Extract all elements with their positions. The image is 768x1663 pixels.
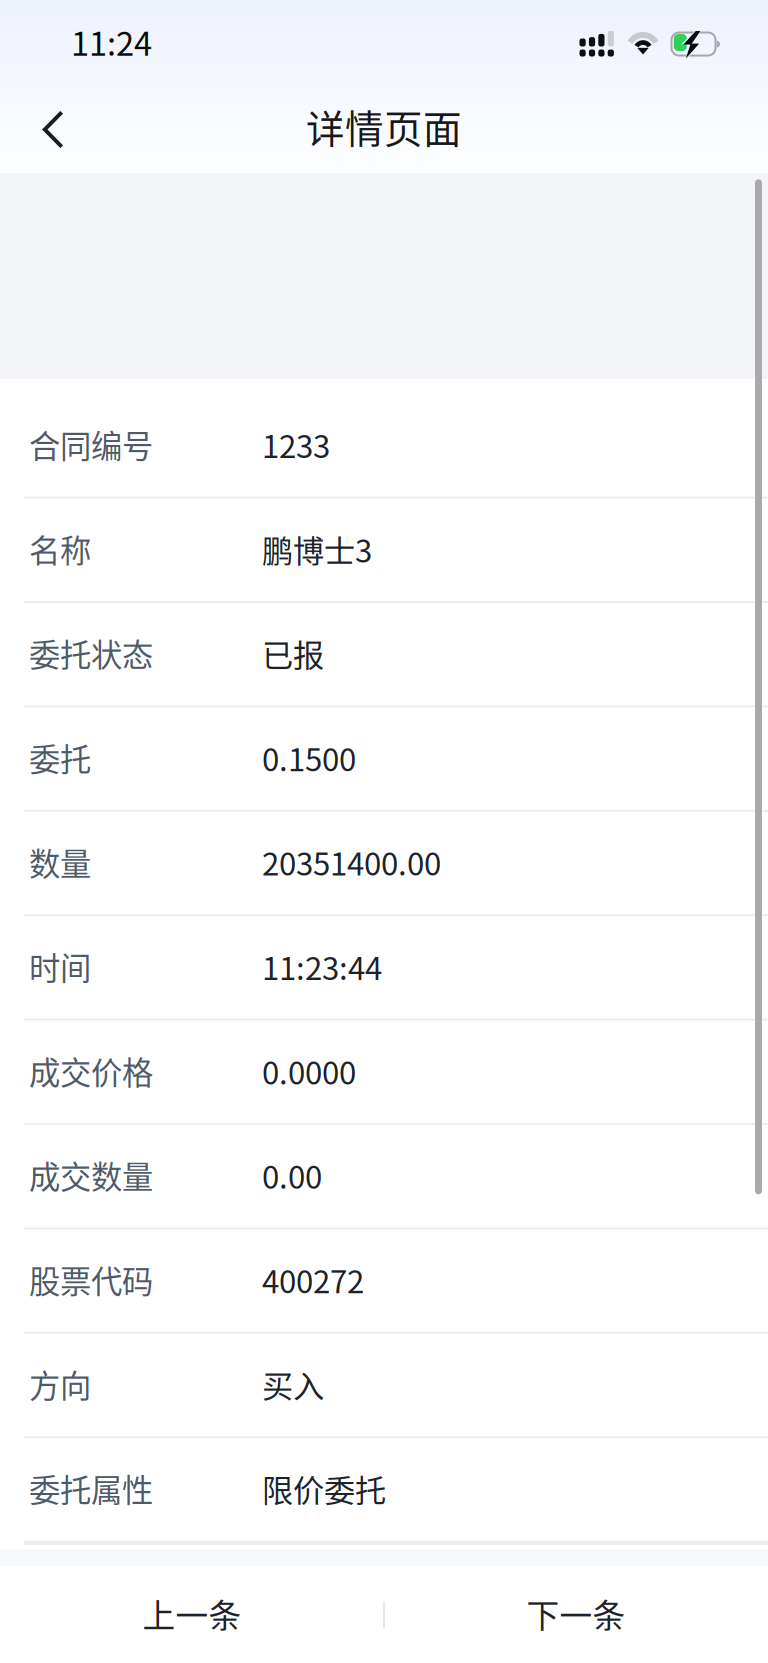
staticText: 方向 <box>29 1361 91 1407</box>
staticText: 股票代码 <box>29 1257 153 1302</box>
staticText: 详情页面 <box>306 99 462 154</box>
staticText: 上一条 <box>142 1590 241 1637</box>
staticText: 数量 <box>29 839 91 885</box>
button[interactable]: 合同编号 <box>0 394 768 499</box>
staticText: 名称 <box>29 526 91 571</box>
staticText: 11:23:44 <box>262 944 382 989</box>
staticText: 委托状态 <box>29 630 153 676</box>
button[interactable]: 成交数量 <box>0 1125 768 1229</box>
button[interactable]: Back <box>16 90 89 171</box>
button[interactable]: 成交价格 <box>0 1021 768 1125</box>
staticText: 成交数量 <box>29 1152 153 1198</box>
staticText: 下一条 <box>526 1590 625 1637</box>
staticText: 20351400.00 <box>262 839 441 885</box>
staticText: 0.0000 <box>262 1048 356 1093</box>
button[interactable]: 委托 <box>0 707 768 812</box>
button[interactable]: 委托状态 <box>0 603 768 707</box>
staticText: 400272 <box>262 1257 364 1302</box>
button[interactable]: 时间 <box>0 916 768 1021</box>
staticText: 1233 <box>262 422 330 467</box>
staticText: 鹏博士3 <box>262 526 372 571</box>
button[interactable]: 名称 <box>0 499 768 603</box>
staticText: 0.00 <box>262 1153 322 1198</box>
staticText: 委托 <box>29 735 91 780</box>
staticText: 限价委托 <box>262 1466 386 1511</box>
staticText: 时间 <box>29 944 91 989</box>
staticText: 0.1500 <box>262 735 356 780</box>
staticText: 委托属性 <box>29 1466 153 1511</box>
staticText: 成交价格 <box>29 1048 153 1093</box>
button[interactable]: 下一条 <box>384 1566 768 1661</box>
button[interactable]: 上一条 <box>0 1566 384 1661</box>
staticText: 买入 <box>262 1361 324 1407</box>
staticText: 11:24 <box>71 18 152 65</box>
button[interactable]: 方向 <box>0 1334 768 1438</box>
button[interactable]: 数量 <box>0 812 768 916</box>
button[interactable]: 委托属性 <box>0 1438 768 1543</box>
button[interactable]: 股票代码 <box>0 1229 768 1334</box>
staticText: 已报 <box>262 631 324 676</box>
staticText: 合同编号 <box>29 422 153 467</box>
